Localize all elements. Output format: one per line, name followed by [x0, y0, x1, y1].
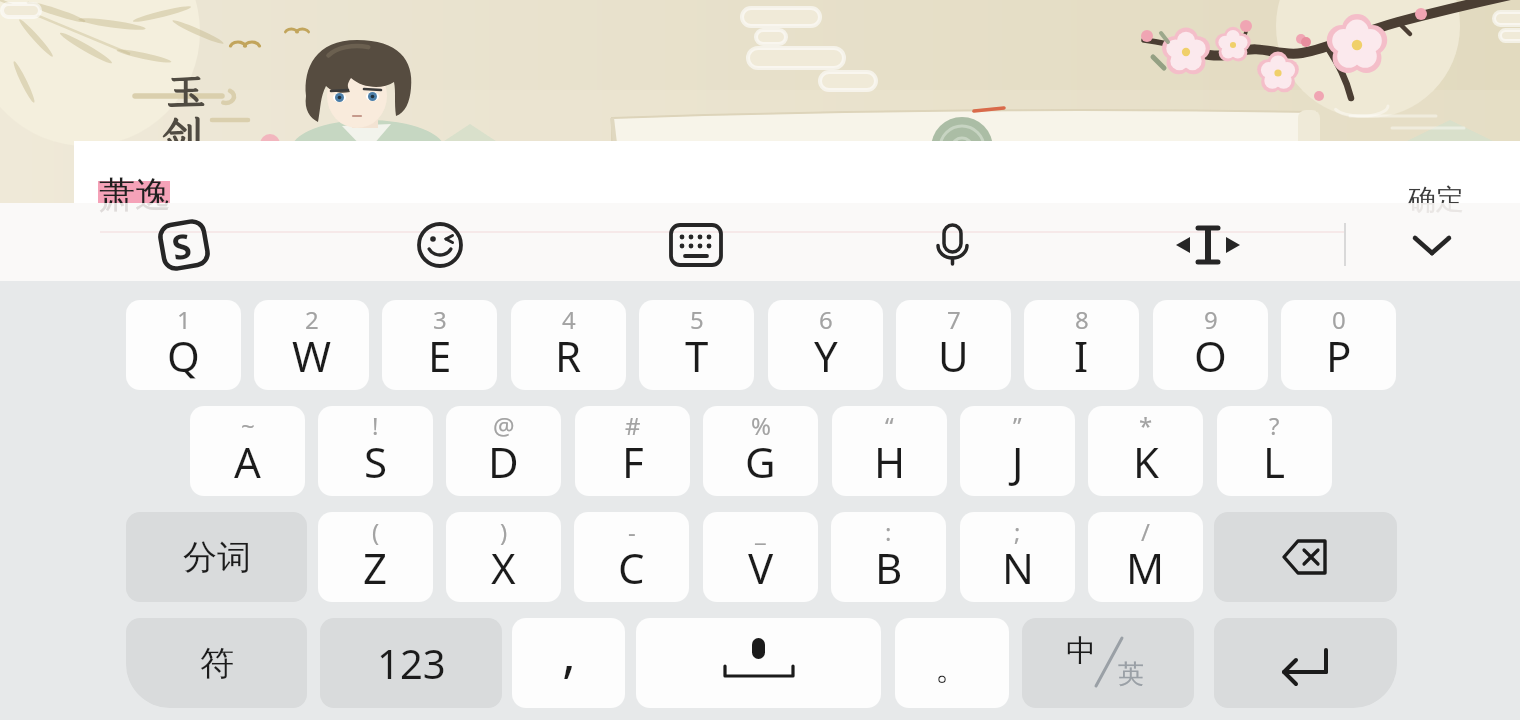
button[interactable]: 8 — [1024, 300, 1139, 390]
staticText: 剑 — [162, 108, 205, 163]
staticText: E — [428, 327, 452, 384]
button[interactable]: “ — [832, 406, 947, 496]
button[interactable]: 7 — [896, 300, 1011, 390]
button[interactable]: , — [512, 618, 625, 708]
button[interactable]: 123 — [320, 618, 502, 708]
staticText: L — [1263, 433, 1286, 490]
button[interactable] — [1214, 512, 1397, 602]
staticText: 6 — [819, 303, 833, 336]
staticText: G — [745, 433, 776, 490]
button[interactable]: : — [831, 512, 946, 602]
staticText: 123 — [377, 636, 446, 690]
staticText: 3 — [433, 303, 447, 336]
button[interactable] — [146, 207, 222, 277]
staticText: ( — [372, 515, 380, 548]
button[interactable] — [636, 618, 881, 708]
button[interactable]: 。 — [895, 618, 1009, 708]
staticText: 玉 — [166, 64, 206, 117]
staticText: , — [562, 618, 576, 687]
button[interactable]: ” — [960, 406, 1075, 496]
staticText: T — [685, 327, 709, 384]
button[interactable]: ? — [1217, 406, 1332, 496]
button[interactable]: 3 — [382, 300, 497, 390]
staticText: X — [491, 539, 516, 596]
staticText: 0 — [1332, 303, 1346, 336]
button[interactable] — [1214, 618, 1397, 708]
staticText: 萧逸 — [99, 203, 171, 217]
staticText: H — [874, 433, 906, 490]
button[interactable]: 符 — [126, 618, 307, 708]
button[interactable]: 5 — [639, 300, 754, 390]
button[interactable]: - — [574, 512, 689, 602]
staticText: 7 — [947, 303, 961, 336]
staticText: O — [1194, 327, 1227, 384]
staticText: U — [938, 327, 969, 384]
button[interactable]: 2 — [254, 300, 369, 390]
button[interactable]: 0 — [1281, 300, 1396, 390]
button[interactable] — [402, 207, 478, 277]
button[interactable]: 中 — [1022, 618, 1194, 708]
staticText: 符 — [200, 642, 234, 685]
button[interactable] — [658, 207, 734, 277]
staticText: 。 — [935, 646, 969, 689]
staticText: Z — [363, 539, 388, 596]
button[interactable]: ) — [446, 512, 561, 602]
staticText: 确定 — [1408, 203, 1464, 217]
staticText: 9 — [1204, 303, 1218, 336]
staticText: S — [364, 433, 388, 490]
staticText: ” — [1013, 409, 1022, 442]
staticText: J — [1012, 433, 1024, 490]
button[interactable]: * — [1088, 406, 1203, 496]
staticText: 4 — [562, 303, 576, 336]
staticText: M — [1126, 539, 1165, 596]
button[interactable] — [1170, 207, 1246, 277]
button[interactable]: _ — [703, 512, 818, 602]
staticText: - — [628, 515, 636, 548]
staticText: “ — [885, 409, 894, 442]
button[interactable]: ~ — [190, 406, 305, 496]
staticText: W — [292, 327, 332, 384]
button[interactable]: 分词 — [126, 512, 307, 602]
staticText: ! — [372, 409, 379, 442]
staticText: ) — [500, 515, 508, 548]
staticText: V — [748, 539, 774, 596]
button[interactable]: ( — [318, 512, 433, 602]
button[interactable] — [914, 207, 990, 277]
staticText: 英 — [1118, 658, 1144, 691]
staticText: B — [875, 539, 903, 596]
staticText: @ — [493, 409, 515, 442]
button[interactable]: @ — [446, 406, 561, 496]
staticText: * — [1139, 409, 1153, 442]
staticText: 5 — [690, 303, 704, 336]
button[interactable]: 4 — [511, 300, 626, 390]
button[interactable]: ; — [960, 512, 1075, 602]
button[interactable]: ! — [318, 406, 433, 496]
staticText: % — [751, 409, 771, 442]
button[interactable] — [1394, 207, 1470, 277]
staticText: N — [1002, 539, 1034, 596]
staticText: # — [625, 409, 641, 442]
staticText: P — [1326, 327, 1352, 384]
staticText: I — [1074, 327, 1089, 384]
staticText: _ — [755, 515, 766, 548]
staticText: 中 — [1066, 632, 1096, 670]
staticText: 2 — [305, 303, 319, 336]
staticText: C — [618, 539, 645, 596]
staticText: ? — [1269, 409, 1280, 442]
staticText: K — [1133, 433, 1159, 490]
staticText: 萧逸 — [99, 172, 171, 217]
button[interactable]: % — [703, 406, 818, 496]
staticText: 8 — [1075, 303, 1089, 336]
staticText: ~ — [241, 409, 255, 442]
staticText: A — [234, 433, 261, 490]
button[interactable]: 9 — [1153, 300, 1268, 390]
staticText: / — [1141, 515, 1150, 548]
staticText: 分词 — [183, 536, 251, 579]
button[interactable]: 6 — [768, 300, 883, 390]
button[interactable]: / — [1088, 512, 1203, 602]
button[interactable]: # — [575, 406, 690, 496]
staticText: ; — [1014, 515, 1021, 548]
button[interactable] — [74, 141, 1520, 203]
button[interactable]: 1 — [126, 300, 241, 390]
staticText: 1 — [177, 303, 191, 336]
